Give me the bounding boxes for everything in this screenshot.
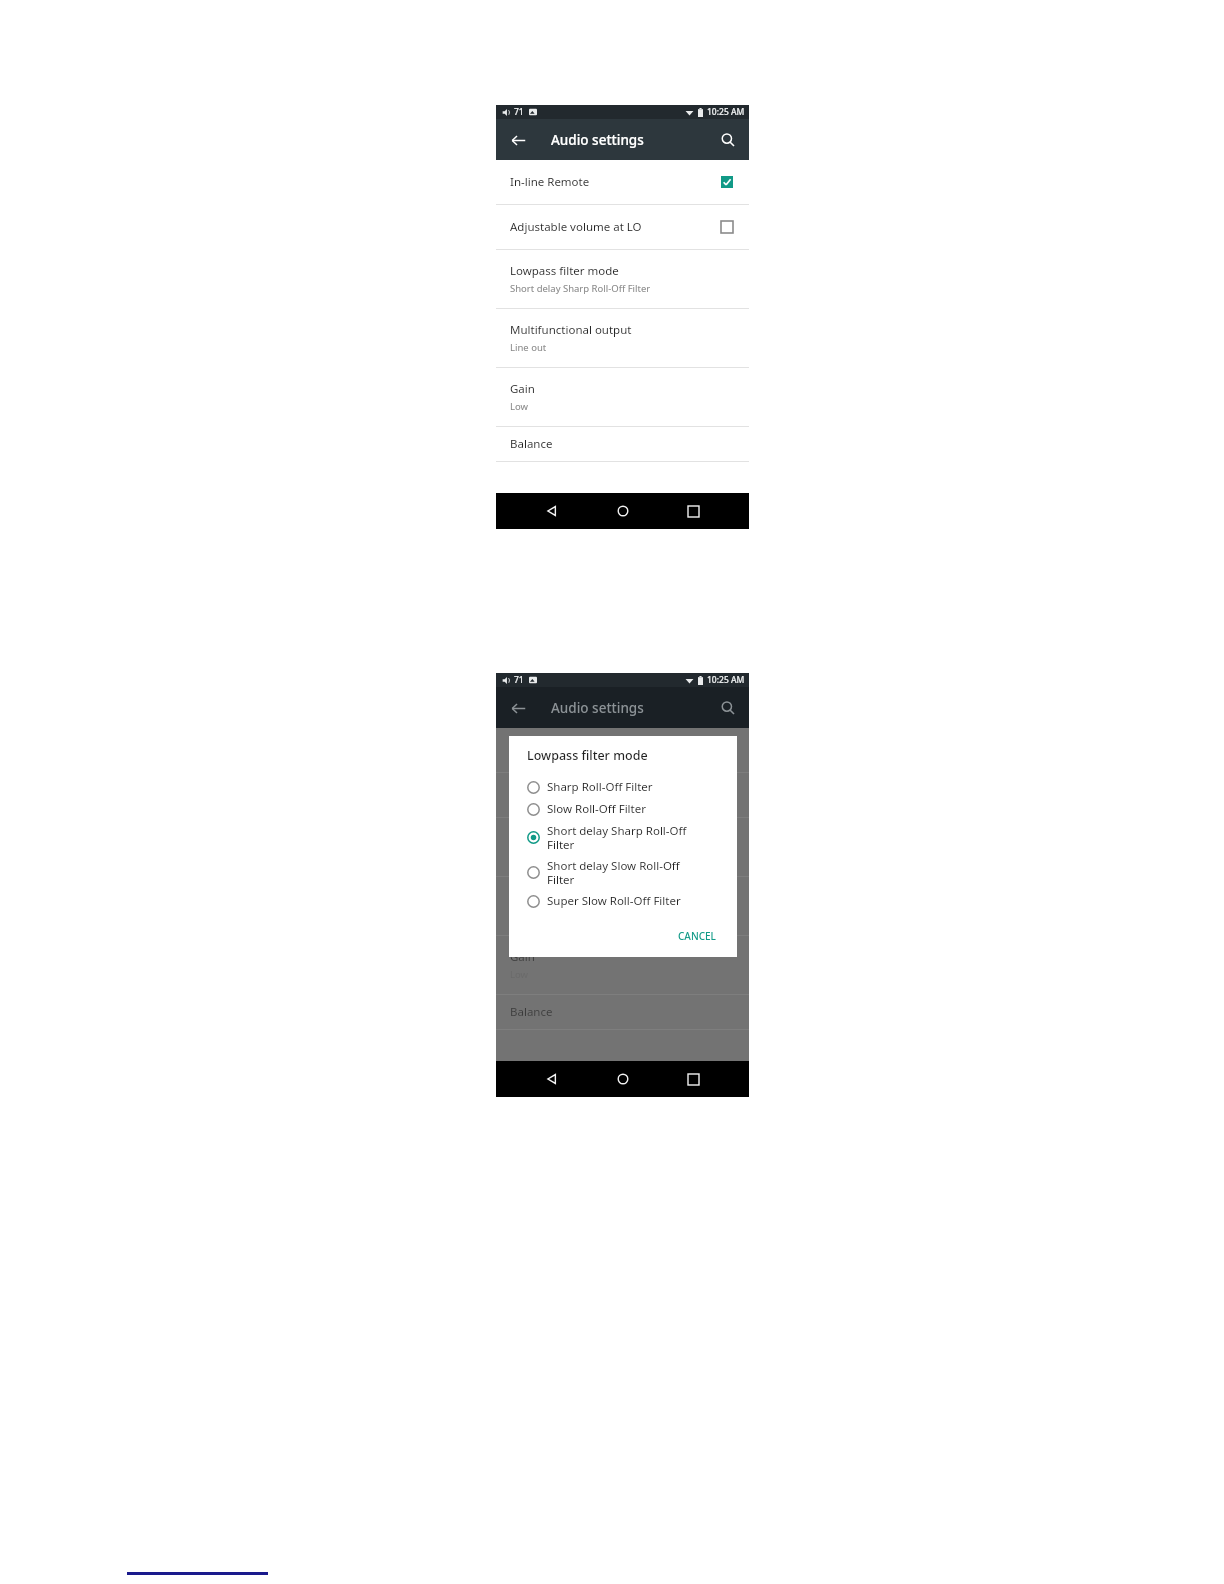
staticText: Sharp Roll-Off Filter: [547, 779, 653, 795]
staticText: Low: [510, 400, 529, 413]
staticText: CANCEL: [678, 929, 716, 943]
button[interactable]: Slow Roll-Off Filter: [509, 798, 737, 820]
staticText: Multifunctional output: [510, 890, 632, 906]
button[interactable]: In-line Remote: [496, 160, 749, 204]
staticText: Gain: [510, 381, 535, 397]
button[interactable]: Search: [716, 696, 740, 720]
staticText: Short delay Sharp Roll-Off Filter: [510, 850, 651, 863]
staticText: Adjustable volume at LO: [510, 787, 721, 803]
staticText: Super Slow Roll-Off Filter: [547, 893, 681, 909]
button[interactable]: Back: [537, 496, 567, 526]
staticText: Lowpass filter mode: [510, 831, 619, 847]
staticText: Line out: [510, 341, 547, 354]
staticText: Balance: [510, 1004, 553, 1020]
button[interactable]: Home: [608, 496, 638, 526]
staticText: 71: [514, 106, 524, 118]
button[interactable]: Multifunctional output: [496, 309, 749, 367]
staticText: Slow Roll-Off Filter: [547, 801, 646, 817]
staticText: Multifunctional output: [510, 322, 632, 338]
button[interactable]: Adjustable volume at LO: [496, 205, 749, 249]
button[interactable]: CANCEL: [673, 926, 721, 946]
staticText: 10:25 AM: [707, 106, 745, 118]
staticText: Lowpass filter mode: [510, 263, 619, 279]
button[interactable]: Short delay Sharp Roll-Off Filter: [509, 820, 737, 855]
staticText: Audio settings: [551, 699, 644, 717]
button[interactable]: Back: [506, 128, 530, 152]
staticText: Adjustable volume at LO: [510, 219, 721, 235]
staticText: Gain: [510, 949, 535, 965]
button[interactable]: Super Slow Roll-Off Filter: [509, 890, 737, 912]
staticText: In-line Remote: [510, 174, 721, 190]
button[interactable]: Home: [608, 1064, 638, 1094]
button[interactable]: Search: [716, 128, 740, 152]
button[interactable]: Lowpass filter mode: [496, 818, 749, 876]
button[interactable]: Recent apps: [678, 1064, 708, 1094]
staticText: Lowpass filter mode: [527, 747, 648, 764]
button[interactable]: Gain: [496, 936, 749, 994]
staticText: Short delay Sharp Roll-Off Filter: [547, 823, 687, 852]
button[interactable]: Sharp Roll-Off Filter: [509, 776, 737, 798]
button[interactable]: Back: [537, 1064, 567, 1094]
staticText: Short delay Sharp Roll-Off Filter: [510, 282, 651, 295]
staticText: 10:25 AM: [707, 674, 745, 686]
button[interactable]: Balance: [496, 995, 749, 1029]
button[interactable]: Balance: [496, 427, 749, 461]
staticText: Short delay Slow Roll-Off Filter: [547, 858, 680, 887]
button[interactable]: Lowpass filter mode: [496, 250, 749, 308]
staticText: Balance: [510, 436, 553, 452]
staticText: 71: [514, 674, 524, 686]
button[interactable]: Gain: [496, 368, 749, 426]
button[interactable]: Back: [506, 696, 530, 720]
button[interactable]: In-line Remote: [496, 728, 749, 772]
button[interactable]: Recent apps: [678, 496, 708, 526]
button[interactable]: Adjustable volume at LO: [496, 773, 749, 817]
button[interactable]: Short delay Slow Roll-Off Filter: [509, 855, 737, 890]
staticText: In-line Remote: [510, 742, 721, 758]
button[interactable]: Multifunctional output: [496, 877, 749, 935]
staticText: Audio settings: [551, 131, 644, 149]
